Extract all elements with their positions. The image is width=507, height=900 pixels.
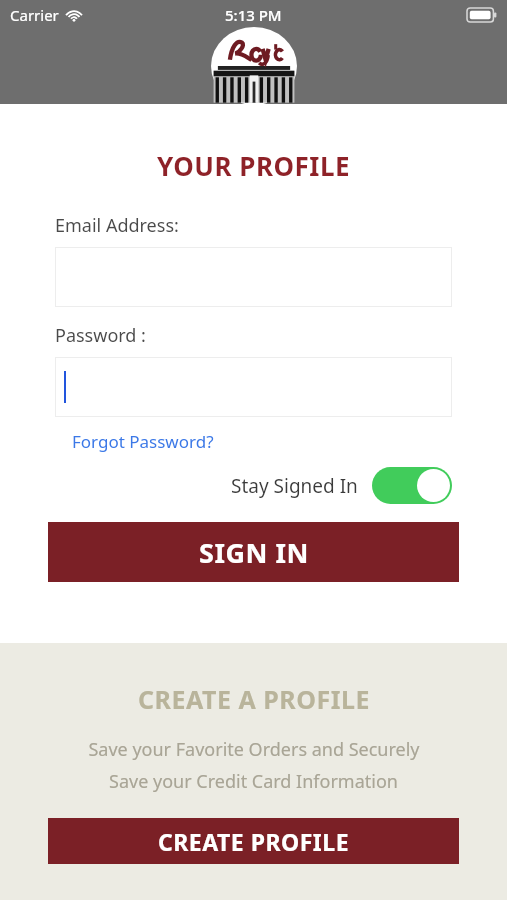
button[interactable]: CREATE PROFILE xyxy=(48,818,459,864)
staticText: YOUR PROFILE xyxy=(0,148,507,183)
staticText: Stay Signed In xyxy=(231,473,358,499)
staticText: SIGN IN xyxy=(199,534,309,571)
staticText: Save your Favorite Orders and Securely xyxy=(88,737,420,762)
button[interactable]: Forgot Password? xyxy=(72,430,214,453)
other: Kay's Italian Restaurant logo xyxy=(211,27,297,105)
button[interactable]: Stay Signed In xyxy=(231,467,452,504)
button[interactable] xyxy=(55,247,452,307)
staticText: CREATE A PROFILE xyxy=(138,682,370,716)
staticText: Password : xyxy=(55,323,146,348)
staticText: CREATE PROFILE xyxy=(158,826,350,857)
staticText: Save your Credit Card Information xyxy=(109,769,398,794)
button[interactable]: Stay Signed In toggle, on xyxy=(372,467,452,504)
button[interactable] xyxy=(55,357,452,417)
staticText: Forgot Password? xyxy=(72,430,214,453)
staticText: Carrier xyxy=(10,5,59,25)
staticText: Email Address: xyxy=(55,213,179,238)
button[interactable]: SIGN IN xyxy=(48,522,459,582)
staticText: 5:13 PM xyxy=(225,5,282,25)
